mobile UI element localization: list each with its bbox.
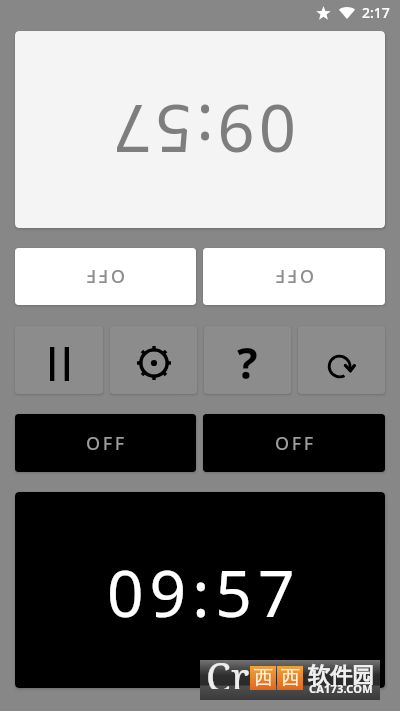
staticText: ? xyxy=(237,333,258,392)
staticText: 软件园 xyxy=(308,662,374,690)
staticText: OFF xyxy=(86,431,127,456)
staticText: CA173.COM xyxy=(309,681,373,696)
button[interactable]: OFF xyxy=(203,248,385,305)
staticText: OFF xyxy=(275,431,316,456)
button[interactable]: 09:57 xyxy=(15,31,385,228)
button[interactable]: OFF xyxy=(15,248,196,305)
staticText: Cr xyxy=(206,649,250,689)
button[interactable]: OFF xyxy=(203,414,385,472)
button[interactable]: Settings xyxy=(110,326,197,394)
staticText: 西 xyxy=(254,666,273,690)
staticText: 2:17 xyxy=(362,3,390,22)
staticText: 西 xyxy=(281,666,300,690)
button[interactable]: OFF xyxy=(15,414,196,472)
button[interactable]: 09:57 xyxy=(15,492,385,688)
button[interactable]: Reset xyxy=(298,326,385,394)
staticText: 09:57 xyxy=(109,85,296,174)
staticText: 09:57 xyxy=(107,549,301,636)
staticText: OFF xyxy=(84,264,125,289)
staticText: OFF xyxy=(273,264,314,289)
button[interactable]: Pause xyxy=(15,326,103,394)
button[interactable]: Help xyxy=(204,326,291,394)
